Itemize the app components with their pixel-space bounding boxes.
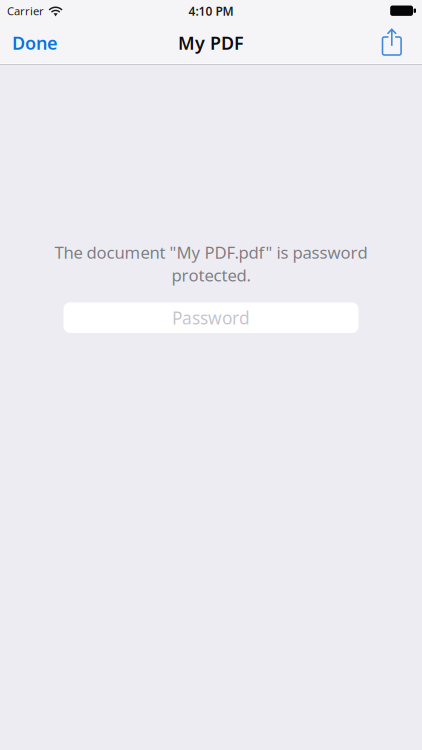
button[interactable]: Done (0, 24, 70, 64)
staticText: 4:10 PM (188, 3, 233, 19)
staticText: Password (172, 306, 250, 329)
staticText: protected. (171, 264, 250, 286)
staticText: Carrier (7, 3, 44, 19)
staticText: My PDF (178, 31, 244, 55)
staticText: The document "My PDF.pdf" is password (54, 241, 367, 264)
staticText: Done (12, 30, 58, 55)
button[interactable]: Share (370, 24, 422, 64)
button[interactable]: Password (63, 302, 358, 333)
